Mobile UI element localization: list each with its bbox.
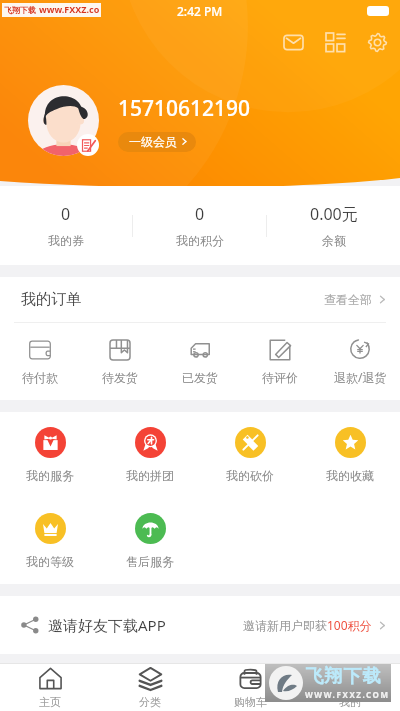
- button[interactable]: 0: [0, 186, 132, 265]
- staticText: 待发货: [102, 370, 138, 385]
- staticText: 邀请好友下载APP: [48, 615, 166, 635]
- button[interactable]: 我的等级: [0, 498, 100, 584]
- staticText: 0: [61, 203, 71, 225]
- button[interactable]: 一级会员: [118, 132, 196, 152]
- staticText: 查看全部: [324, 292, 372, 307]
- button[interactable]: Messages: [272, 21, 314, 63]
- staticText: 我的等级: [26, 554, 74, 569]
- button[interactable]: Edit profile: [77, 134, 99, 156]
- staticText: 2:42 PM: [177, 3, 223, 19]
- staticText: 主页: [39, 695, 61, 709]
- button[interactable]: 已发货: [160, 323, 240, 400]
- staticText: 一级会员: [129, 134, 177, 149]
- button[interactable]: 主页: [0, 664, 100, 711]
- staticText: 待评价: [262, 370, 298, 385]
- staticText: 我的服务: [26, 468, 74, 483]
- button[interactable]: 邀请好友下载APP: [0, 596, 400, 654]
- staticText: WWW.FXXZ.COM: [305, 689, 390, 700]
- staticText: 0: [195, 203, 205, 225]
- button[interactable]: 我的服务: [0, 412, 100, 498]
- staticText: www.FXXZ.com: [39, 3, 101, 17]
- staticText: 0.00元: [310, 203, 358, 225]
- staticText: 购物车: [234, 695, 267, 709]
- button[interactable]: 售后服务: [100, 498, 200, 584]
- button[interactable]: 0: [133, 186, 266, 265]
- button[interactable]: 我的砍价: [200, 412, 300, 498]
- staticText: 退款/退货: [334, 369, 387, 385]
- button[interactable]: 分类: [100, 664, 200, 711]
- staticText: 售后服务: [126, 554, 174, 569]
- staticText: 我的积分: [176, 233, 224, 248]
- staticText: 邀请新用户即获: [243, 618, 327, 633]
- staticText: 飞翔下载: [4, 5, 36, 15]
- button[interactable]: 购物车: [200, 664, 300, 711]
- staticText: 飞翔下载: [305, 665, 381, 688]
- staticText: 我的拼团: [126, 468, 174, 483]
- button[interactable]: 待付款: [0, 323, 80, 400]
- button[interactable]: 0.00元: [267, 186, 400, 265]
- staticText: 我的砍价: [226, 468, 274, 483]
- staticText: 我的订单: [21, 290, 81, 309]
- staticText: 待付款: [22, 370, 58, 385]
- staticText: 我的收藏: [326, 468, 374, 483]
- button[interactable]: 我的收藏: [300, 412, 400, 498]
- button[interactable]: 我的拼团: [100, 412, 200, 498]
- staticText: 已发货: [182, 370, 218, 385]
- button[interactable]: Settings: [356, 21, 398, 63]
- staticText: 我的券: [48, 233, 84, 248]
- staticText: 我的: [339, 695, 361, 709]
- button[interactable]: 我的订单: [0, 277, 400, 322]
- button[interactable]: 我的: [300, 664, 400, 711]
- button[interactable]: 待评价: [240, 323, 320, 400]
- button[interactable]: 退款/退货: [320, 323, 400, 400]
- button[interactable]: Dashboard: [314, 21, 356, 63]
- staticText: 15710612190: [118, 94, 251, 123]
- staticText: 余额: [322, 233, 346, 248]
- staticText: 分类: [139, 695, 161, 709]
- staticText: 100积分: [327, 617, 372, 633]
- button[interactable]: 待发货: [80, 323, 160, 400]
